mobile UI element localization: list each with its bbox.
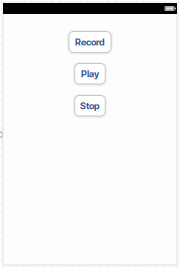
staticText: Play [81,68,99,79]
staticText: Stop [80,100,100,111]
button[interactable]: Record [69,31,111,52]
button[interactable]: Play [75,63,105,84]
staticText: Record [75,36,105,48]
button[interactable]: Stop [75,95,105,116]
